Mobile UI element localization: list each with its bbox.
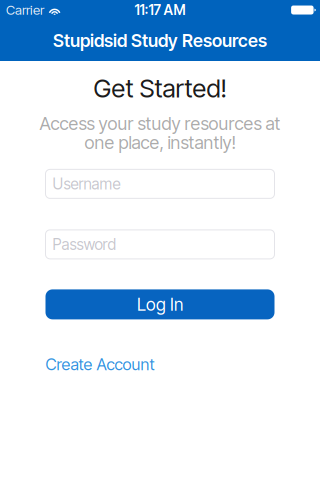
button[interactable]: Password <box>45 230 274 259</box>
staticText: 11:17 AM <box>134 2 185 18</box>
staticText: Carrier <box>6 2 44 18</box>
staticText: Access your study resources at <box>39 113 280 134</box>
staticText: Get Started! <box>93 73 226 104</box>
staticText: Log In <box>137 294 183 315</box>
staticText: Password <box>52 235 116 254</box>
staticText: one place, instantly! <box>84 132 235 153</box>
button[interactable]: Create Account <box>45 354 154 374</box>
staticText: Stupidsid Study Resources <box>53 30 267 51</box>
button[interactable]: Log In <box>45 289 274 319</box>
staticText: Username <box>52 175 120 193</box>
staticText: Create Account <box>45 354 154 374</box>
button[interactable]: Username <box>45 169 274 198</box>
